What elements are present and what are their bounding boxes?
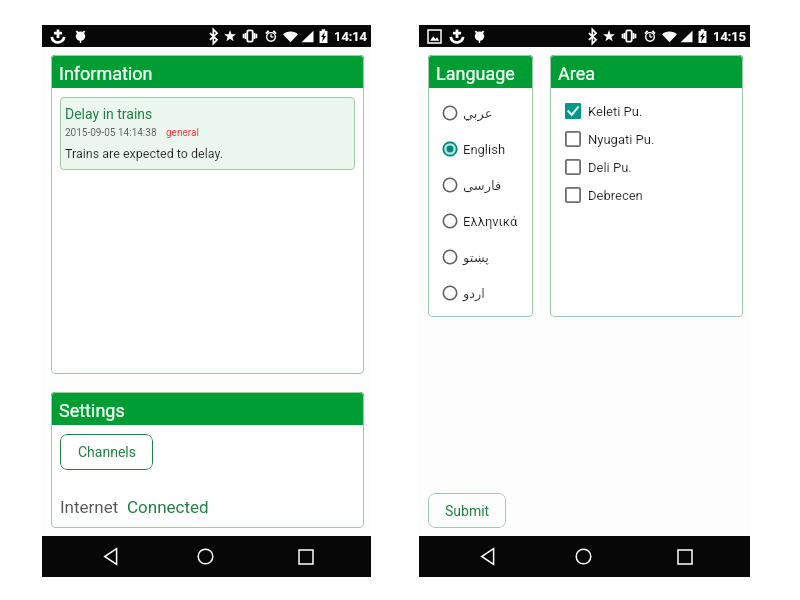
staticText: 14:14 <box>334 29 367 44</box>
button[interactable]: عربي <box>442 95 533 131</box>
staticText: 14:15 <box>713 29 746 44</box>
button[interactable]: Ελληνικά <box>442 203 533 239</box>
button[interactable]: پښتو <box>442 239 533 275</box>
staticText: عربي <box>463 106 493 121</box>
staticText: Deli Pu. <box>588 160 632 175</box>
staticText: Trains are expected to delay. <box>65 146 224 161</box>
staticText: general <box>166 127 199 139</box>
staticText: اردو <box>463 286 485 301</box>
staticText: Submit <box>445 503 490 519</box>
button[interactable]: Home <box>561 536 605 577</box>
staticText: Settings <box>59 400 125 421</box>
button[interactable]: اردو <box>442 275 533 311</box>
button[interactable]: Recents <box>663 536 707 577</box>
button[interactable]: Submit <box>428 493 506 528</box>
staticText: Area <box>558 63 596 84</box>
button[interactable]: Home <box>183 536 227 577</box>
staticText: Internet <box>60 497 119 517</box>
button[interactable]: Keleti Pu. <box>565 97 743 125</box>
staticText: Connected <box>127 497 209 517</box>
button[interactable]: Back <box>89 536 133 577</box>
button[interactable]: Recents <box>284 536 328 577</box>
staticText: Ελληνικά <box>463 214 518 229</box>
button[interactable]: Nyugati Pu. <box>565 125 743 153</box>
button[interactable]: English <box>442 131 533 167</box>
button[interactable]: Delay in trains <box>60 97 355 170</box>
staticText: Nyugati Pu. <box>588 132 655 147</box>
staticText: پښتو <box>463 250 489 265</box>
button[interactable]: Back <box>466 536 510 577</box>
button[interactable]: Debrecen <box>565 181 743 209</box>
staticText: Keleti Pu. <box>588 104 643 119</box>
button[interactable]: Channels <box>60 434 153 470</box>
button[interactable]: Deli Pu. <box>565 153 743 181</box>
staticText: Channels <box>78 444 136 460</box>
staticText: Language <box>436 63 515 84</box>
staticText: 2015-09-05 14:14:38 <box>65 127 157 139</box>
staticText: English <box>463 142 506 157</box>
staticText: Debrecen <box>588 188 643 203</box>
staticText: Information <box>59 63 153 84</box>
button[interactable]: فارسی <box>442 167 533 203</box>
staticText: فارسی <box>463 178 502 193</box>
staticText: Delay in trains <box>65 106 153 122</box>
